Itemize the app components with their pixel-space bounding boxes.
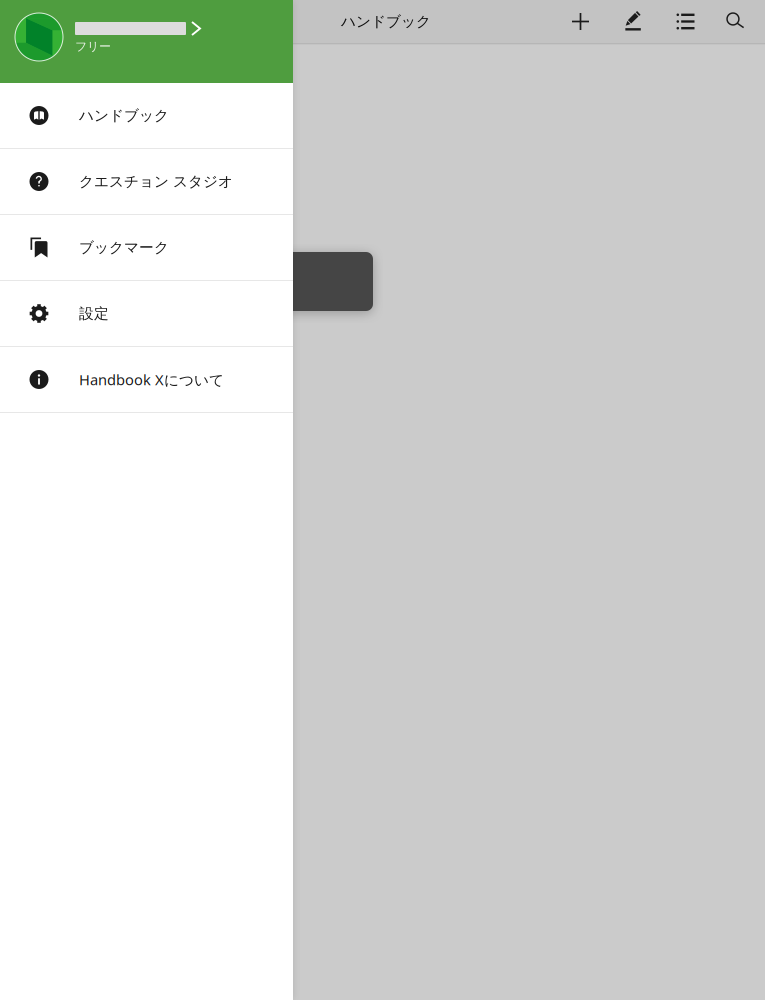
button[interactable]: Sort [660,0,711,43]
button[interactable]: クエスチョン スタジオ [0,149,293,215]
staticText: ハンドブック [79,106,169,125]
button[interactable]: Search [711,0,760,43]
staticText: ブックマーク [79,238,169,257]
button[interactable]: ハンドブック [0,83,293,149]
button[interactable]: Edit [607,0,660,43]
button[interactable]: ブックマーク [0,215,293,281]
staticText: クエスチョン スタジオ [79,172,233,191]
button[interactable]: Handbook Xについて [0,347,293,413]
staticText: ハンドブック [341,12,431,31]
staticText: 設定 [79,304,109,323]
staticText: Handbook Xについて [79,369,224,389]
button[interactable]: Add [554,0,607,43]
button[interactable]: 設定 [0,281,293,347]
staticText: フリー [75,39,111,54]
